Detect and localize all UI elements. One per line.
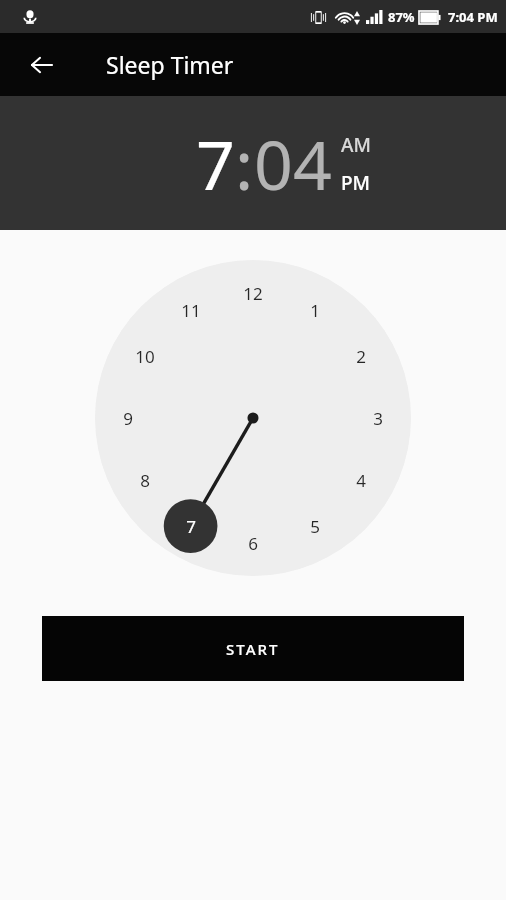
staticText: 4 [356,469,366,492]
button[interactable]: AM [341,132,371,158]
staticText: 6 [248,532,258,555]
staticText: Sleep Timer [106,49,234,80]
staticText: : [235,117,254,210]
button[interactable]: Clock dial, 7 o'clock selected [95,260,411,576]
staticText: 7:04 PM [448,8,498,26]
staticText: 12 [243,282,263,305]
button[interactable]: START [42,616,464,681]
staticText: 10 [135,345,155,368]
staticText: 8 [140,469,150,492]
staticText: 9 [123,407,133,430]
button[interactable]: PM [341,170,371,196]
staticText: 3 [373,407,383,430]
staticText: 11 [181,299,201,322]
staticText: 5 [310,515,320,538]
staticText: 1 [310,299,320,322]
staticText: 87% [388,8,415,26]
staticText: START [226,639,280,659]
button[interactable]: 04 [254,117,332,210]
staticText: 2 [356,345,366,368]
button[interactable]: 7 [196,117,235,210]
staticText: 7 [186,515,196,538]
button[interactable]: Back [18,41,66,89]
